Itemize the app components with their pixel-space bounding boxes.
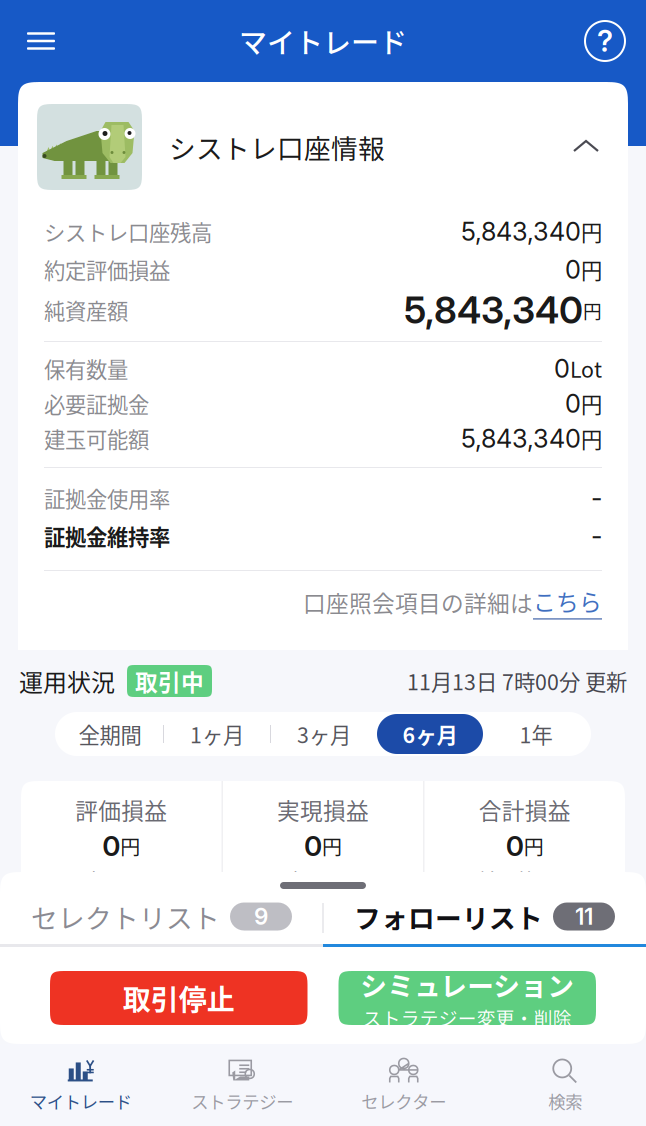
button[interactable]: 検索 [484,1050,646,1120]
staticText: 円 [581,216,602,247]
staticText: 円 [120,831,140,860]
staticText: 円 [581,254,602,285]
staticText: ストラテジー [191,1088,293,1114]
staticText: 円 [583,296,602,323]
button[interactable]: 口座照会項目の詳細は [18,584,628,620]
staticText: 9 [254,903,268,930]
staticText: 必要証拠金 [44,388,149,419]
staticText: 約定評価損益 [44,254,170,285]
button[interactable]: 3ヶ月 [271,714,377,754]
staticText: 実現損益 [277,793,369,826]
button[interactable]: 1年 [483,714,589,754]
staticText: 0 [304,829,322,863]
staticText: 11 [575,903,593,930]
staticText: 6ヶ月 [402,719,457,749]
staticText: 円 [581,388,602,419]
staticText: 純資産額 [44,295,128,325]
staticText: 1ヶ月 [190,719,244,749]
staticText: 口座照会項目の詳細は [303,586,533,618]
button[interactable]: 1ヶ月 [164,714,270,754]
staticText: 検索 [548,1088,582,1114]
staticText: 取引中 [135,665,204,697]
staticText: 全期間 [78,719,141,749]
staticText: シミュレーション [360,965,574,1004]
staticText: 0 [554,353,570,384]
staticText: 証拠金維持率 [44,521,170,551]
staticText: 円 [322,831,342,860]
staticText: 円 [524,831,544,860]
button[interactable]: ストラテジー [161,1050,323,1120]
staticText: Lot [570,353,602,384]
staticText: 本日 0円 [285,866,360,895]
staticText: 前日比 0円 [477,866,572,895]
staticText: 3ヶ月 [297,719,351,749]
button[interactable]: セレクトリスト [0,889,323,947]
button[interactable]: フォローリスト [323,889,646,947]
staticText: こちら [533,584,602,617]
staticText: 1年 [519,719,552,749]
staticText: 運用状況 [19,664,115,698]
staticText: 5,843,340 [404,287,583,333]
staticText: 証拠金使用率 [44,483,170,513]
staticText: - [591,483,602,513]
button[interactable]: Help [576,11,634,71]
staticText: 0 [506,829,524,863]
button[interactable]: 取引停止 [50,971,307,1025]
staticText: 取引停止 [123,978,235,1018]
button[interactable]: セレクター [323,1050,484,1120]
staticText: セレクター [361,1088,446,1114]
button[interactable]: 全期間 [57,714,163,754]
button[interactable]: マイトレード [0,1050,161,1120]
staticText: 建玉可能額 [44,423,149,454]
button[interactable]: シミュレーション [338,971,596,1025]
staticText: 0 [565,388,581,419]
staticText: フォローリスト [354,897,543,936]
staticText: 保有数量 [44,353,128,384]
staticText: 5,843,340 [461,423,581,454]
staticText: 0 [102,829,120,863]
staticText: シストレ口座情報 [169,128,385,166]
staticText: ? [597,23,613,59]
staticText: 0 [565,254,581,285]
button[interactable]: シストレ口座情報 [18,82,628,212]
staticText: - [591,521,602,551]
staticText: 合計損益 [479,793,571,826]
staticText: シストレ口座残高 [44,216,212,247]
staticText: 円 [581,423,602,454]
staticText: 5,843,340 [461,216,581,247]
staticText: セレクトリスト [31,897,220,936]
staticText: 評価損益 [75,793,167,826]
staticText: 11月13日 7時00分 更新 [407,666,627,696]
button[interactable]: 6ヶ月 [377,714,483,754]
staticText: ストラテジー変更・削除 [363,1004,572,1031]
staticText: マイトレード [30,1088,132,1114]
button[interactable]: Menu [12,11,70,71]
staticText: マイトレード [239,21,407,61]
